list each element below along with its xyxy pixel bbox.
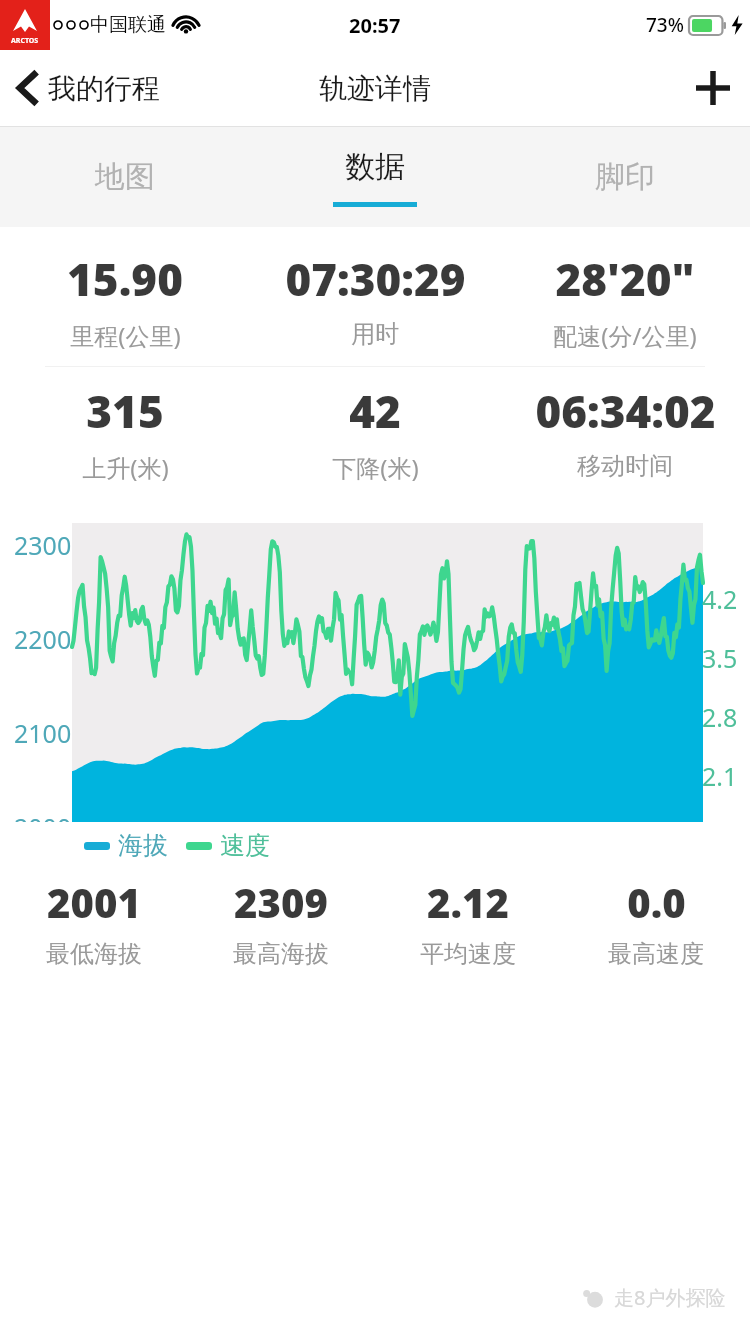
staticText: 2200 [14, 622, 72, 656]
staticText: 数据 [345, 148, 405, 186]
staticText: 2.8 [702, 700, 738, 734]
staticText: 2309 [234, 875, 328, 929]
staticText: 2100 [14, 716, 72, 750]
staticText: 走8户外探险 [614, 1284, 726, 1311]
staticText: 配速(分/公里) [553, 319, 697, 352]
button[interactable]: 脚印 [500, 127, 750, 227]
button[interactable]: 地图 [0, 127, 250, 227]
staticText: 最高海拔 [233, 939, 329, 969]
staticText: 315 [86, 381, 164, 441]
staticText: 脚印 [595, 158, 655, 196]
staticText: 0.0 [627, 875, 686, 929]
staticText: 3.5 [702, 641, 738, 675]
staticText: 海拔 [118, 830, 168, 861]
staticText: 速度 [220, 830, 270, 861]
button[interactable]: 数据 [250, 127, 500, 227]
staticText: 地图 [95, 158, 155, 196]
staticText: ARCTOS [11, 36, 39, 46]
staticText: 2300 [14, 528, 72, 562]
staticText: 最高速度 [608, 939, 704, 969]
staticText: 1.4 [702, 818, 738, 822]
staticText: 中国联通 [90, 13, 166, 37]
staticText: 2001 [47, 875, 141, 929]
staticText: 4.2 [702, 582, 738, 616]
staticText: 上升(米) [82, 451, 169, 484]
staticText: 移动时间 [577, 451, 673, 481]
staticText: 最低海拔 [46, 939, 142, 969]
button[interactable]: Add [676, 57, 750, 119]
staticText: 06:34:02 [535, 381, 716, 441]
staticText: 下降(米) [332, 451, 419, 484]
staticText: 15.90 [67, 249, 183, 309]
staticText: 73% [646, 12, 684, 38]
staticText: 里程(公里) [70, 319, 181, 352]
staticText: 用时 [351, 319, 399, 349]
staticText: 2.12 [427, 875, 509, 929]
staticText: 2000 [14, 810, 72, 822]
staticText: 07:30:29 [285, 249, 466, 309]
staticText: 28'20" [555, 249, 695, 309]
staticText: 轨迹详情 [319, 71, 431, 106]
staticText: 我的行程 [48, 71, 160, 106]
staticText: 2.1 [702, 759, 738, 793]
staticText: 平均速度 [420, 939, 516, 969]
staticText: 20:57 [349, 12, 401, 39]
button[interactable]: 我的行程 [0, 62, 174, 114]
staticText: 42 [349, 381, 401, 441]
